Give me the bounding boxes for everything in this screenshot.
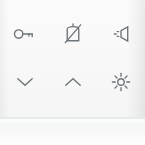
- button[interactable]: Down: [0, 70, 49, 94]
- button[interactable]: Up: [49, 70, 97, 94]
- button[interactable]: Brightness: [97, 70, 145, 94]
- button[interactable]: Volume: [97, 22, 145, 46]
- button[interactable]: Lock: [0, 22, 49, 46]
- button[interactable]: Mute ringer: [49, 22, 97, 46]
